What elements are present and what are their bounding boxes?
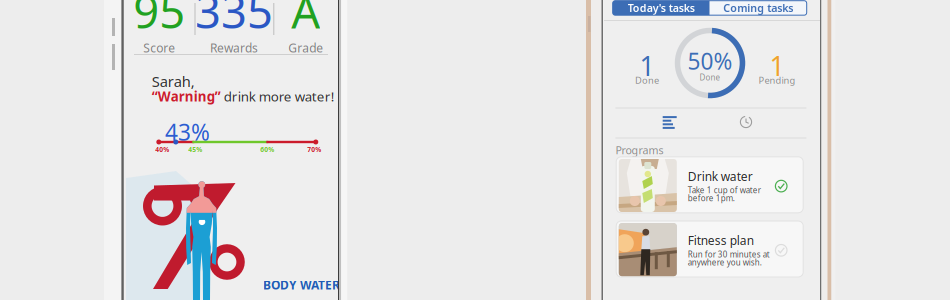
staticText: drink more water! (224, 87, 335, 105)
staticText: Take 1 cup of water (688, 185, 761, 195)
button[interactable]: Fitness plan (616, 221, 803, 277)
staticText: Coming tasks (723, 1, 793, 15)
staticText: Today's tasks (628, 1, 695, 15)
staticText: Fitness plan (688, 232, 754, 248)
staticText: Rewards (210, 40, 258, 56)
staticText: 95 (133, 0, 185, 41)
staticText: A (291, 0, 320, 41)
staticText: 43% (165, 117, 210, 147)
staticText: Grade (288, 40, 323, 56)
staticText: 70% (307, 145, 321, 154)
staticText: Done (699, 72, 720, 83)
staticText: 40% (155, 145, 169, 154)
staticText: 50% (687, 46, 732, 76)
staticText: Run for 30 minutes at (688, 249, 770, 260)
button[interactable]: Task list (640, 108, 700, 136)
button[interactable]: History (716, 108, 776, 136)
staticText: Score (143, 40, 175, 56)
staticText: Drink water (688, 168, 753, 184)
button[interactable]: Coming tasks (710, 1, 807, 15)
staticText: 335 (195, 0, 273, 41)
staticText: “Warning” (152, 87, 224, 105)
staticText: Programs (615, 143, 663, 157)
button[interactable]: Drink water (616, 157, 803, 213)
staticText: 60% (260, 145, 274, 154)
staticText: BODY WATER (263, 277, 340, 293)
staticText: Done (635, 74, 659, 86)
staticText: Pending (758, 74, 795, 86)
button[interactable]: Today's tasks (613, 1, 710, 15)
staticText: anywhere you wish. (688, 257, 762, 268)
staticText: 45% (188, 145, 202, 154)
staticText: Sarah, (152, 71, 195, 91)
staticText: 1 (639, 48, 654, 83)
staticText: before 1pm. (688, 193, 735, 203)
staticText: 1 (769, 48, 784, 83)
